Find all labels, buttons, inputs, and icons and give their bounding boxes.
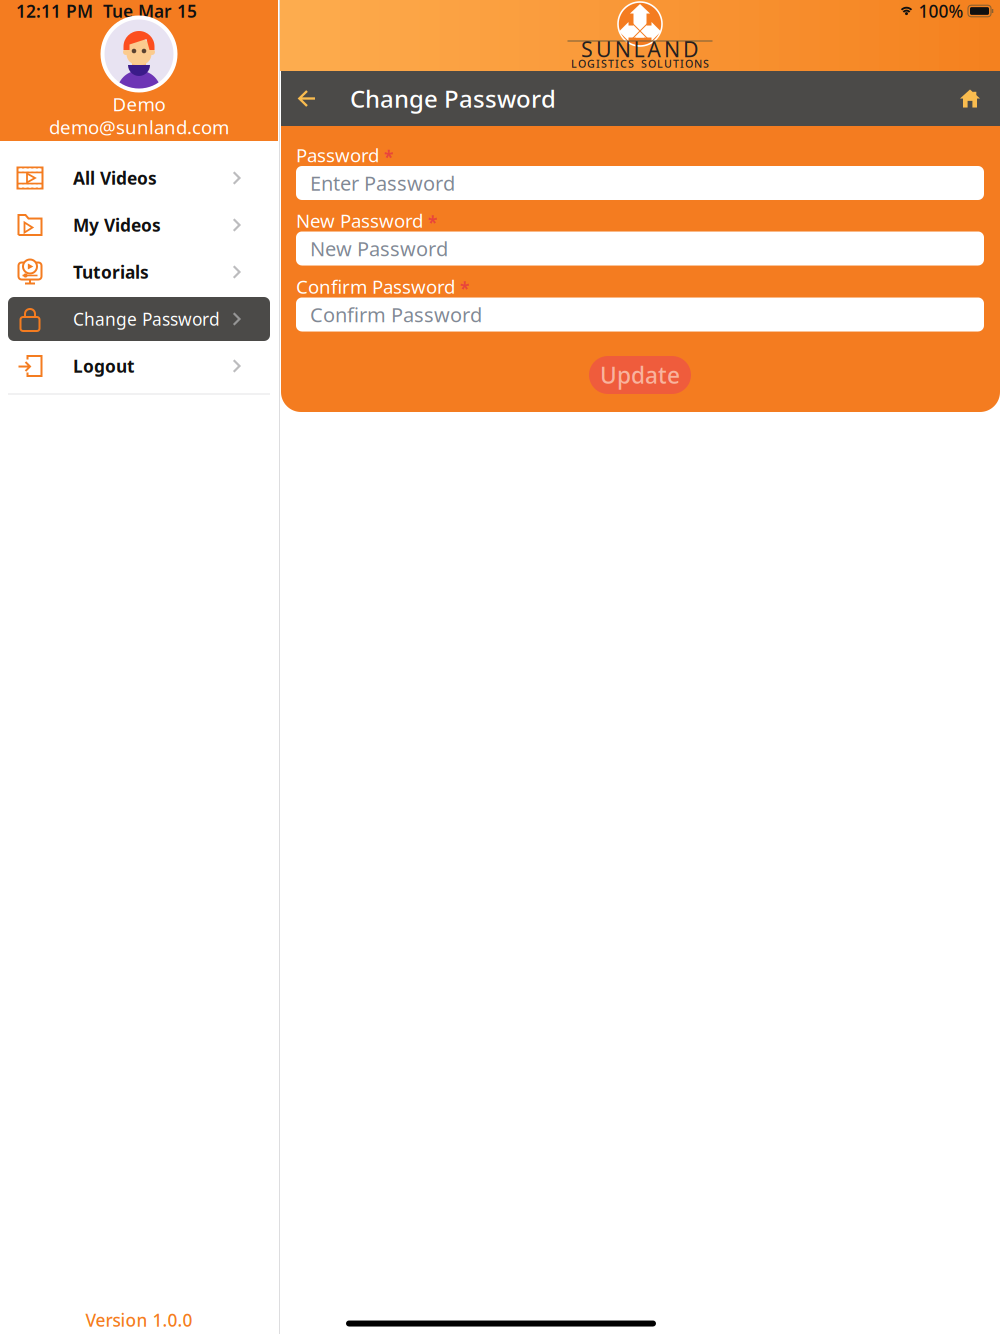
staticText: O bbox=[685, 56, 693, 71]
staticText: N bbox=[615, 35, 631, 63]
staticText: G bbox=[587, 56, 595, 71]
staticText: * bbox=[384, 145, 393, 168]
staticText: S bbox=[628, 56, 634, 71]
button[interactable]: Logout bbox=[8, 344, 270, 388]
staticText: C bbox=[620, 56, 627, 71]
staticText: D bbox=[683, 35, 699, 63]
staticText: I bbox=[615, 56, 619, 71]
button[interactable]: All Videos bbox=[8, 156, 270, 200]
staticText: L bbox=[657, 56, 663, 71]
staticText: demo@sunland.com bbox=[49, 115, 229, 139]
staticText: A bbox=[647, 35, 661, 63]
staticText: S bbox=[581, 35, 593, 63]
staticText: * bbox=[460, 277, 469, 300]
staticText: U bbox=[664, 56, 672, 71]
staticText: Update bbox=[600, 360, 680, 390]
button[interactable]: Version 1.0.0 bbox=[59, 1307, 219, 1333]
button[interactable]: Home bbox=[949, 76, 991, 120]
staticText: Tutorials bbox=[73, 260, 149, 283]
staticText: N bbox=[694, 56, 702, 71]
staticText: T bbox=[673, 56, 679, 71]
staticText: My Videos bbox=[73, 213, 161, 236]
staticText: New Password bbox=[310, 235, 448, 262]
staticText: S bbox=[641, 56, 647, 71]
staticText: Version 1.0.0 bbox=[85, 1308, 192, 1331]
staticText: I bbox=[680, 56, 684, 71]
staticText: Demo bbox=[112, 92, 165, 116]
staticText: Tue Mar 15 bbox=[103, 0, 197, 22]
staticText: Confirm Password bbox=[296, 274, 455, 299]
staticText: L bbox=[571, 56, 577, 71]
staticText: Enter Password bbox=[310, 170, 455, 196]
staticText: * bbox=[428, 211, 437, 234]
staticText: All Videos bbox=[73, 166, 157, 189]
button[interactable]: Change Password bbox=[8, 297, 270, 341]
staticText: S bbox=[703, 56, 709, 71]
staticText: Change Password bbox=[73, 307, 220, 330]
staticText: N bbox=[664, 35, 680, 63]
staticText: Logout bbox=[73, 354, 135, 377]
button[interactable]: Tutorials bbox=[8, 250, 270, 294]
staticText: S bbox=[601, 56, 607, 71]
staticText: L bbox=[633, 35, 644, 63]
staticText: Change Password bbox=[350, 83, 556, 114]
staticText: 100% bbox=[918, 0, 963, 22]
staticText: 12:11 PM bbox=[16, 0, 93, 22]
staticText: O bbox=[578, 56, 586, 71]
staticText: Password bbox=[296, 143, 379, 167]
staticText: U bbox=[596, 35, 612, 63]
staticText: T bbox=[608, 56, 614, 71]
staticText: New Password bbox=[296, 208, 423, 233]
button[interactable]: Back bbox=[285, 76, 329, 120]
staticText bbox=[635, 56, 640, 71]
staticText: Confirm Password bbox=[310, 301, 482, 328]
button[interactable]: My Videos bbox=[8, 203, 270, 247]
staticText: I bbox=[596, 56, 600, 71]
button[interactable]: Update bbox=[589, 356, 691, 394]
staticText: O bbox=[648, 56, 656, 71]
